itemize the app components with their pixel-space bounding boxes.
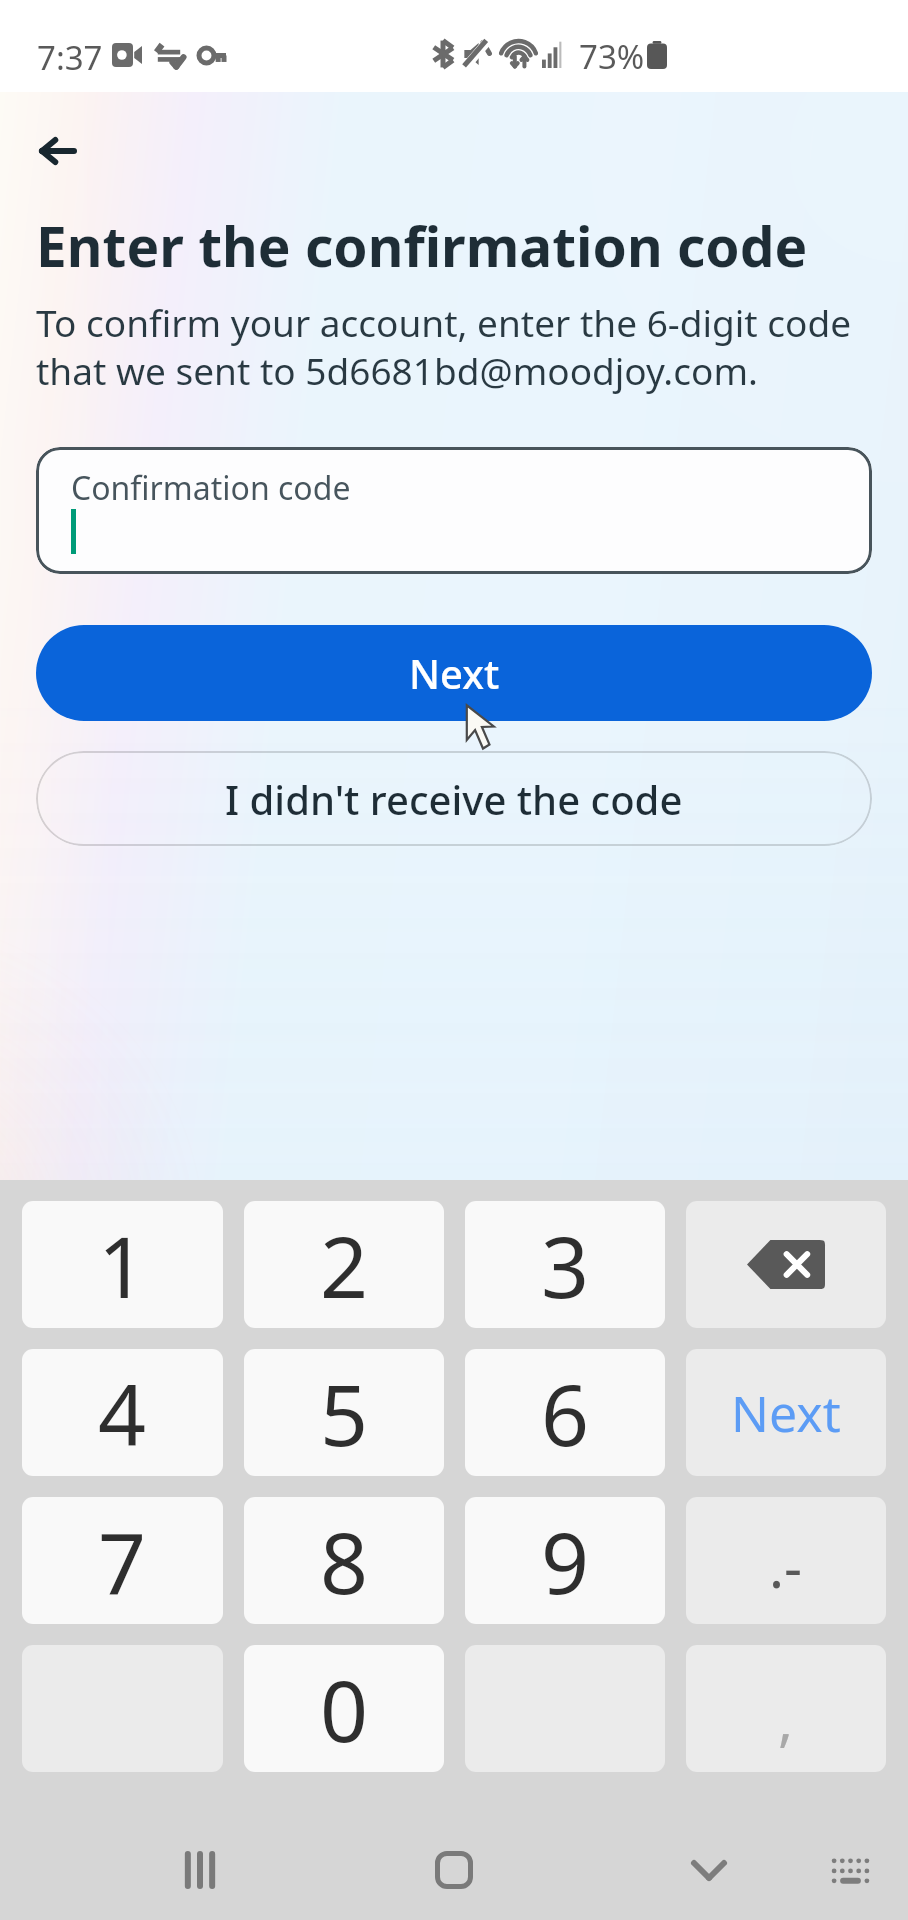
staticText: 73% [579,34,645,79]
button[interactable]: Change keyboard [810,1830,890,1910]
button[interactable]: 3 [465,1201,665,1328]
staticText: 9 [541,1504,590,1618]
staticText: 7 [98,1504,147,1618]
staticText: 5 [320,1356,369,1470]
button[interactable]: Hide keyboard [669,1830,749,1910]
button[interactable]: 6 [465,1349,665,1476]
staticText: 2 [320,1208,369,1322]
staticText: 4 [98,1356,147,1470]
button[interactable]: , [686,1645,886,1772]
button[interactable]: 0 [244,1645,444,1772]
button[interactable]: 5 [244,1349,444,1476]
staticText: 8 [320,1504,369,1618]
staticText: I didn't receive the code [225,772,683,826]
button[interactable]: Recents [160,1830,240,1910]
staticText: .- [769,1528,803,1604]
button[interactable]: 2 [244,1201,444,1328]
button[interactable]: Delete [686,1201,886,1328]
button[interactable]: Home [414,1830,494,1910]
staticText: Confirmation code [71,466,351,510]
staticText: 0 [320,1652,369,1766]
staticText: 7:37 [37,35,103,80]
button[interactable]: 4 [22,1349,223,1476]
button[interactable]: Confirmation code [36,447,872,574]
button[interactable]: 9 [465,1497,665,1624]
button[interactable]: Next [36,625,872,721]
button[interactable]: 1 [22,1201,223,1328]
button[interactable]: I didn't receive the code [36,751,872,846]
staticText: 3 [541,1208,590,1322]
staticText: Next [409,646,500,700]
staticText: Enter the confirmation code [36,208,808,283]
staticText: Next [731,1379,841,1447]
button[interactable]: Back [15,109,99,193]
staticText: , [778,1681,794,1757]
button[interactable]: 8 [244,1497,444,1624]
button[interactable]: 7 [22,1497,223,1624]
button[interactable]: Next [686,1349,886,1476]
staticText: To confirm your account, enter the 6-dig… [36,297,878,396]
staticText: 1 [98,1208,147,1322]
button[interactable]: .- [686,1497,886,1624]
staticText: 6 [541,1356,590,1470]
